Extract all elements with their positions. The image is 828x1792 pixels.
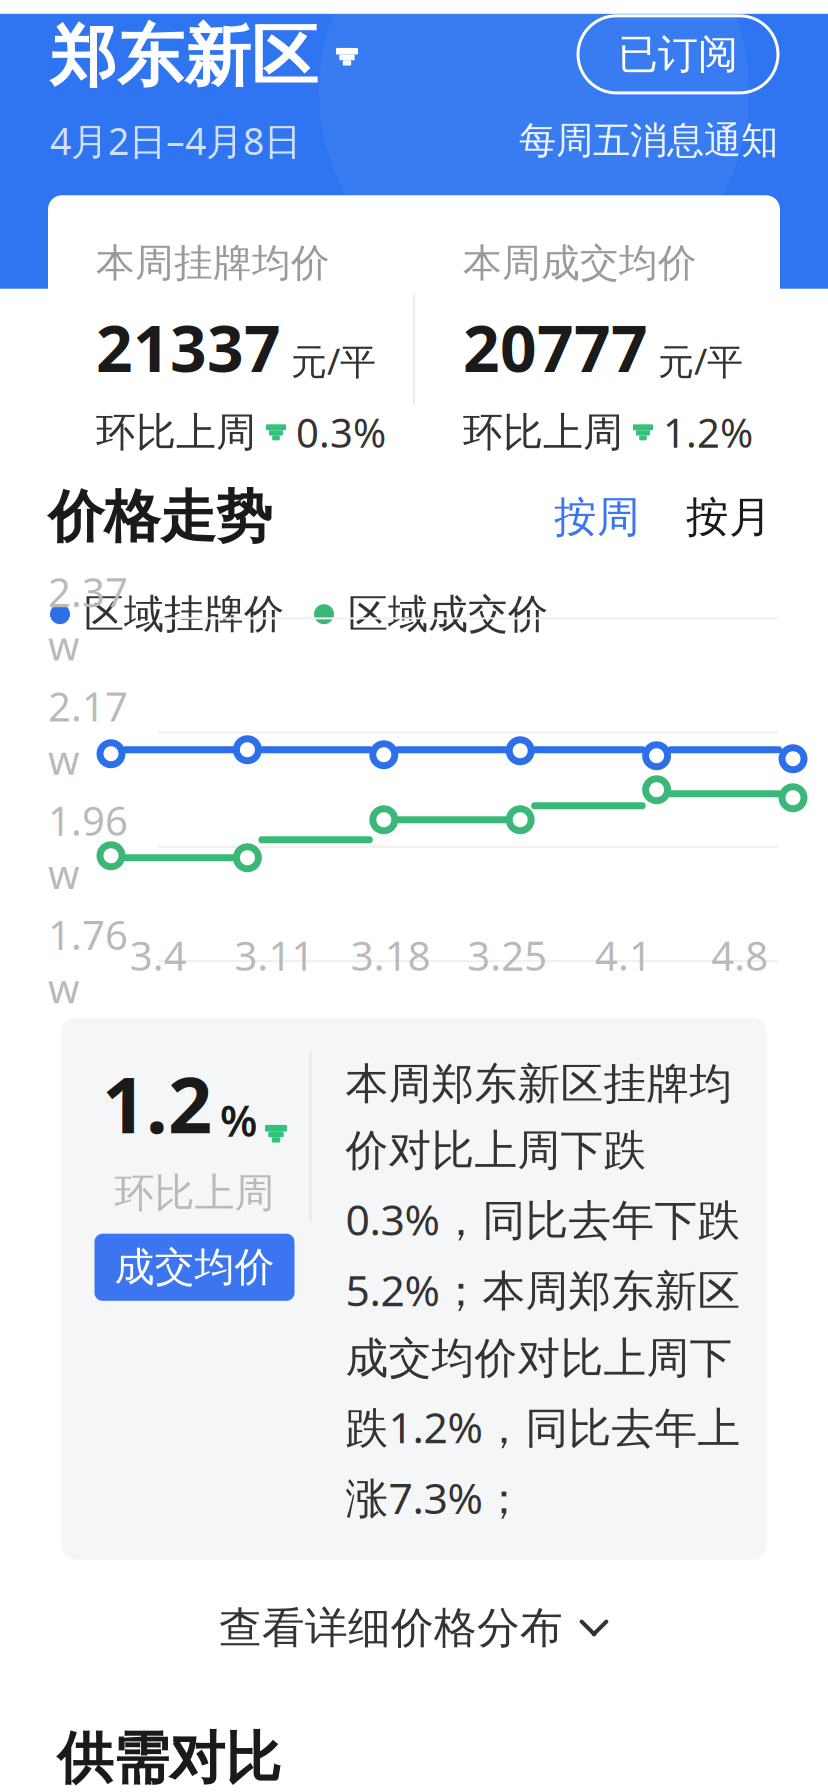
staticText: 3.25 (467, 929, 547, 982)
button[interactable]: 按月 (648, 491, 780, 543)
staticText: 4.8 (711, 929, 768, 982)
staticText: 3.11 (234, 929, 314, 982)
button[interactable]: 查看详细价格分布 (0, 1572, 828, 1684)
staticText: 4.1 (595, 929, 652, 982)
staticText: 供需对比 (57, 1724, 281, 1792)
staticText: 0.3% (296, 406, 386, 459)
staticText: 4月2日–4月8日 (50, 116, 301, 165)
staticText: 郑东新区 (50, 16, 318, 98)
staticText: 区域成交价 (348, 590, 548, 639)
staticText: 环比上周 (114, 1169, 274, 1218)
staticText: 环比上周 (463, 408, 623, 457)
staticText: 20777 (463, 305, 648, 390)
staticText: 本周挂牌均价 (96, 239, 330, 287)
staticText: 元/平 (658, 337, 743, 385)
staticText: 3.4 (130, 929, 187, 982)
button[interactable]: 已订阅 (578, 16, 778, 93)
staticText: % (220, 1092, 257, 1149)
staticText: 3.18 (351, 929, 431, 982)
button[interactable]: 成交均价 (94, 1234, 294, 1301)
staticText: 价格走势 (48, 483, 272, 552)
staticText: 查看详细价格分布 (219, 1602, 563, 1654)
staticText: 成交均价 (114, 1243, 274, 1292)
staticText: 元/平 (291, 337, 376, 385)
staticText: 1.76w (48, 908, 128, 1014)
staticText: 环比上周 (96, 408, 256, 457)
staticText: 1.96w (48, 794, 128, 900)
staticText: 1.2 (102, 1052, 212, 1155)
button[interactable]: 郑东新区 (50, 16, 358, 98)
staticText: 1.2% (663, 406, 753, 459)
staticText: 本周郑东新区挂牌均价对比上周下跌0.3%，同比去年下跌5.2%；本周郑东新区成交… (345, 1058, 740, 1526)
staticText: 2.17w (48, 679, 128, 786)
staticText: 按周 (554, 491, 640, 543)
staticText: 2.37w (48, 565, 128, 671)
staticText: 21337 (96, 305, 281, 390)
button[interactable]: 按周 (546, 491, 648, 543)
staticText: 区域挂牌价 (84, 590, 284, 639)
staticText: 本周成交均价 (463, 239, 697, 287)
staticText: 按月 (686, 491, 772, 543)
staticText: 每周五消息通知 (519, 117, 778, 163)
staticText: 已订阅 (618, 30, 738, 79)
